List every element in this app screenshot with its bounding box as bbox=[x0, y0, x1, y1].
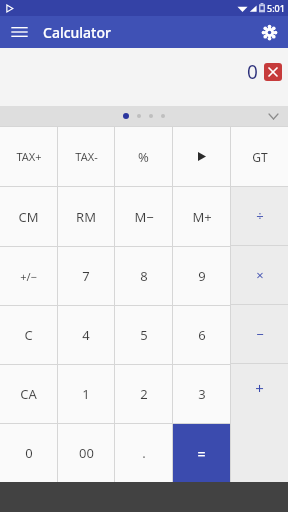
button[interactable]: = bbox=[173, 424, 230, 482]
button[interactable]: % bbox=[115, 127, 172, 186]
button[interactable]: 3 bbox=[173, 365, 230, 423]
staticText: TAX+ bbox=[16, 149, 42, 164]
button[interactable]: M− bbox=[115, 187, 172, 246]
button[interactable]: M+ bbox=[173, 187, 230, 246]
staticText: 2 bbox=[140, 385, 148, 403]
button[interactable]: +/− bbox=[0, 247, 57, 305]
button[interactable]: 9 bbox=[173, 247, 230, 305]
staticText: ÷ bbox=[256, 207, 264, 225]
staticText: 8 bbox=[140, 267, 148, 285]
staticText: 0 bbox=[247, 59, 258, 85]
button[interactable]: 8 bbox=[115, 247, 172, 305]
staticText: 00 bbox=[79, 444, 94, 462]
staticText: CM bbox=[18, 208, 39, 226]
staticText: 7 bbox=[82, 267, 90, 285]
button[interactable]: 6 bbox=[173, 306, 230, 364]
staticText: +/− bbox=[20, 269, 37, 284]
staticText: 5 bbox=[140, 326, 148, 344]
staticText: 0 bbox=[25, 444, 33, 462]
button[interactable]: Settings bbox=[257, 20, 281, 44]
button[interactable]: 00 bbox=[58, 424, 114, 482]
button[interactable]: + bbox=[231, 364, 288, 482]
button[interactable]: CM bbox=[0, 187, 57, 246]
button[interactable]: CA bbox=[0, 365, 57, 423]
button[interactable]: C bbox=[0, 306, 57, 364]
button[interactable]: RM bbox=[58, 187, 114, 246]
button[interactable]: TAX+ bbox=[0, 127, 57, 186]
staticText: 1 bbox=[82, 385, 90, 403]
staticText: − bbox=[256, 325, 264, 343]
button[interactable]: 4 bbox=[58, 306, 114, 364]
staticText: = bbox=[197, 444, 206, 463]
button[interactable]: × bbox=[231, 246, 288, 304]
button[interactable]: Next bbox=[173, 127, 230, 186]
staticText: 3 bbox=[198, 385, 206, 403]
button[interactable]: TAX- bbox=[58, 127, 114, 186]
staticText: 6 bbox=[198, 326, 206, 344]
button[interactable]: − bbox=[231, 305, 288, 363]
staticText: CA bbox=[20, 385, 37, 403]
staticText: Calculator bbox=[43, 23, 111, 42]
staticText: × bbox=[256, 266, 264, 284]
staticText: 5:01 bbox=[267, 2, 285, 14]
staticText: % bbox=[138, 148, 149, 166]
staticText: M+ bbox=[192, 208, 212, 226]
button[interactable]: Delete bbox=[264, 63, 282, 81]
button[interactable]: Collapse keypad bbox=[265, 108, 281, 124]
button[interactable]: 7 bbox=[58, 247, 114, 305]
button[interactable]: Open navigation menu bbox=[7, 20, 31, 44]
staticText: M− bbox=[134, 208, 154, 226]
button[interactable]: 0 bbox=[0, 424, 57, 482]
staticText: 9 bbox=[198, 267, 206, 285]
staticText: GT bbox=[252, 149, 268, 165]
staticText: . bbox=[142, 444, 146, 462]
staticText: RM bbox=[76, 208, 96, 226]
staticText: TAX- bbox=[75, 149, 98, 164]
button[interactable]: 5 bbox=[115, 306, 172, 364]
staticText: 4 bbox=[82, 326, 90, 344]
button[interactable]: ÷ bbox=[231, 187, 288, 245]
staticText: + bbox=[255, 378, 264, 398]
button[interactable]: 2 bbox=[115, 365, 172, 423]
staticText: C bbox=[24, 326, 33, 344]
button[interactable]: GT bbox=[231, 127, 288, 186]
button[interactable]: 1 bbox=[58, 365, 114, 423]
